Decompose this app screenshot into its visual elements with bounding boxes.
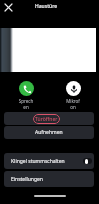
button[interactable]: Einstellungen <box>4 171 94 187</box>
staticText: Aufnehmen <box>35 129 63 136</box>
staticText: Türöffner <box>35 116 58 123</box>
button[interactable]: Sprechen <box>18 81 34 110</box>
staticText: Sprechen <box>18 98 34 110</box>
button[interactable]: Türöffner <box>4 112 94 125</box>
button[interactable]: Close <box>1 0 15 14</box>
staticText: Einstellungen <box>11 176 43 183</box>
staticText: Klingel stummschalten <box>11 158 83 165</box>
button[interactable]: Mikrofon <box>65 81 81 110</box>
button[interactable]: Aufnehmen <box>4 126 94 139</box>
other: Mute doorbell toggle <box>83 158 92 164</box>
staticText: Mikrofon <box>65 98 81 110</box>
button[interactable]: Klingel stummschalten <box>4 153 94 169</box>
staticText: Haustüre <box>35 3 58 10</box>
